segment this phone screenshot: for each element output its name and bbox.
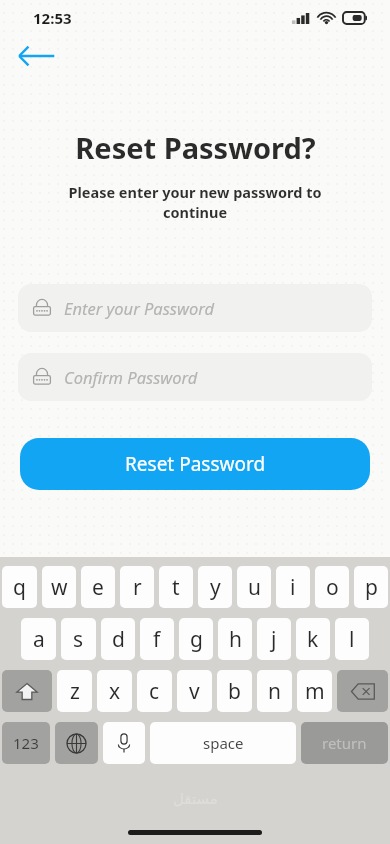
staticText: g — [190, 625, 203, 654]
button[interactable]: v — [177, 670, 212, 712]
staticText: l — [349, 625, 355, 654]
staticText: return — [322, 733, 367, 753]
button[interactable]: space — [150, 722, 296, 764]
staticText: Reset Password — [125, 451, 266, 477]
staticText: q — [13, 573, 26, 602]
staticText: Reset Password? — [75, 128, 316, 167]
button[interactable]: w — [42, 566, 76, 608]
staticText: x — [109, 677, 121, 706]
staticText: Enter your Password — [64, 297, 215, 319]
button[interactable]: Reset Password — [20, 438, 370, 490]
staticText: p — [365, 573, 378, 602]
button[interactable]: Shift — [2, 670, 52, 712]
button[interactable]: x — [97, 670, 132, 712]
staticText: j — [271, 625, 277, 654]
button[interactable]: 123 — [2, 722, 50, 764]
staticText: u — [248, 573, 261, 602]
button[interactable]: b — [217, 670, 252, 712]
button[interactable]: u — [237, 566, 271, 608]
staticText: d — [112, 625, 125, 654]
staticText: f — [153, 625, 161, 654]
button[interactable]: p — [354, 566, 388, 608]
staticText: s — [73, 625, 84, 654]
button[interactable]: l — [335, 618, 369, 660]
staticText: مستقل — [173, 790, 218, 807]
button[interactable]: h — [218, 618, 252, 660]
button[interactable]: Enter your Password — [18, 284, 372, 332]
staticText: 12:53 — [33, 8, 72, 28]
staticText: Confirm Password — [64, 366, 198, 388]
button[interactable]: f — [140, 618, 174, 660]
button[interactable]: Change keyboard — [55, 722, 98, 764]
staticText: h — [229, 625, 242, 654]
button[interactable]: n — [257, 670, 292, 712]
button[interactable]: o — [315, 566, 349, 608]
staticText: y — [210, 573, 221, 602]
button[interactable]: d — [101, 618, 135, 660]
staticText: w — [51, 573, 68, 602]
button[interactable]: Voice input — [103, 722, 145, 764]
button[interactable]: return — [301, 722, 388, 764]
staticText: k — [307, 625, 319, 654]
button[interactable]: j — [257, 618, 291, 660]
button[interactable]: r — [120, 566, 154, 608]
button[interactable]: m — [297, 670, 332, 712]
staticText: v — [189, 677, 200, 706]
button[interactable]: z — [57, 670, 92, 712]
staticText: i — [290, 573, 296, 602]
button[interactable]: q — [2, 566, 37, 608]
button[interactable]: s — [61, 618, 96, 660]
staticText: c — [149, 677, 160, 706]
staticText: n — [268, 677, 281, 706]
button[interactable]: t — [159, 566, 193, 608]
staticText: b — [228, 677, 241, 706]
staticText: m — [305, 677, 325, 706]
staticText: a — [33, 625, 45, 654]
button[interactable]: a — [21, 618, 56, 660]
staticText: e — [92, 573, 104, 602]
staticText: z — [70, 677, 80, 706]
button[interactable]: e — [81, 566, 115, 608]
button[interactable]: Back — [10, 40, 64, 72]
button[interactable]: c — [137, 670, 172, 712]
staticText: space — [203, 733, 244, 753]
staticText: r — [133, 573, 142, 602]
staticText: t — [172, 573, 180, 602]
button[interactable]: g — [179, 618, 213, 660]
button[interactable]: i — [276, 566, 310, 608]
staticText: Please enter your new password to contin… — [50, 182, 340, 222]
button[interactable]: k — [296, 618, 330, 660]
button[interactable]: Backspace — [337, 670, 388, 712]
button[interactable]: y — [198, 566, 232, 608]
staticText: 123 — [13, 733, 39, 753]
button[interactable]: Confirm Password — [18, 353, 372, 401]
staticText: o — [326, 573, 339, 602]
